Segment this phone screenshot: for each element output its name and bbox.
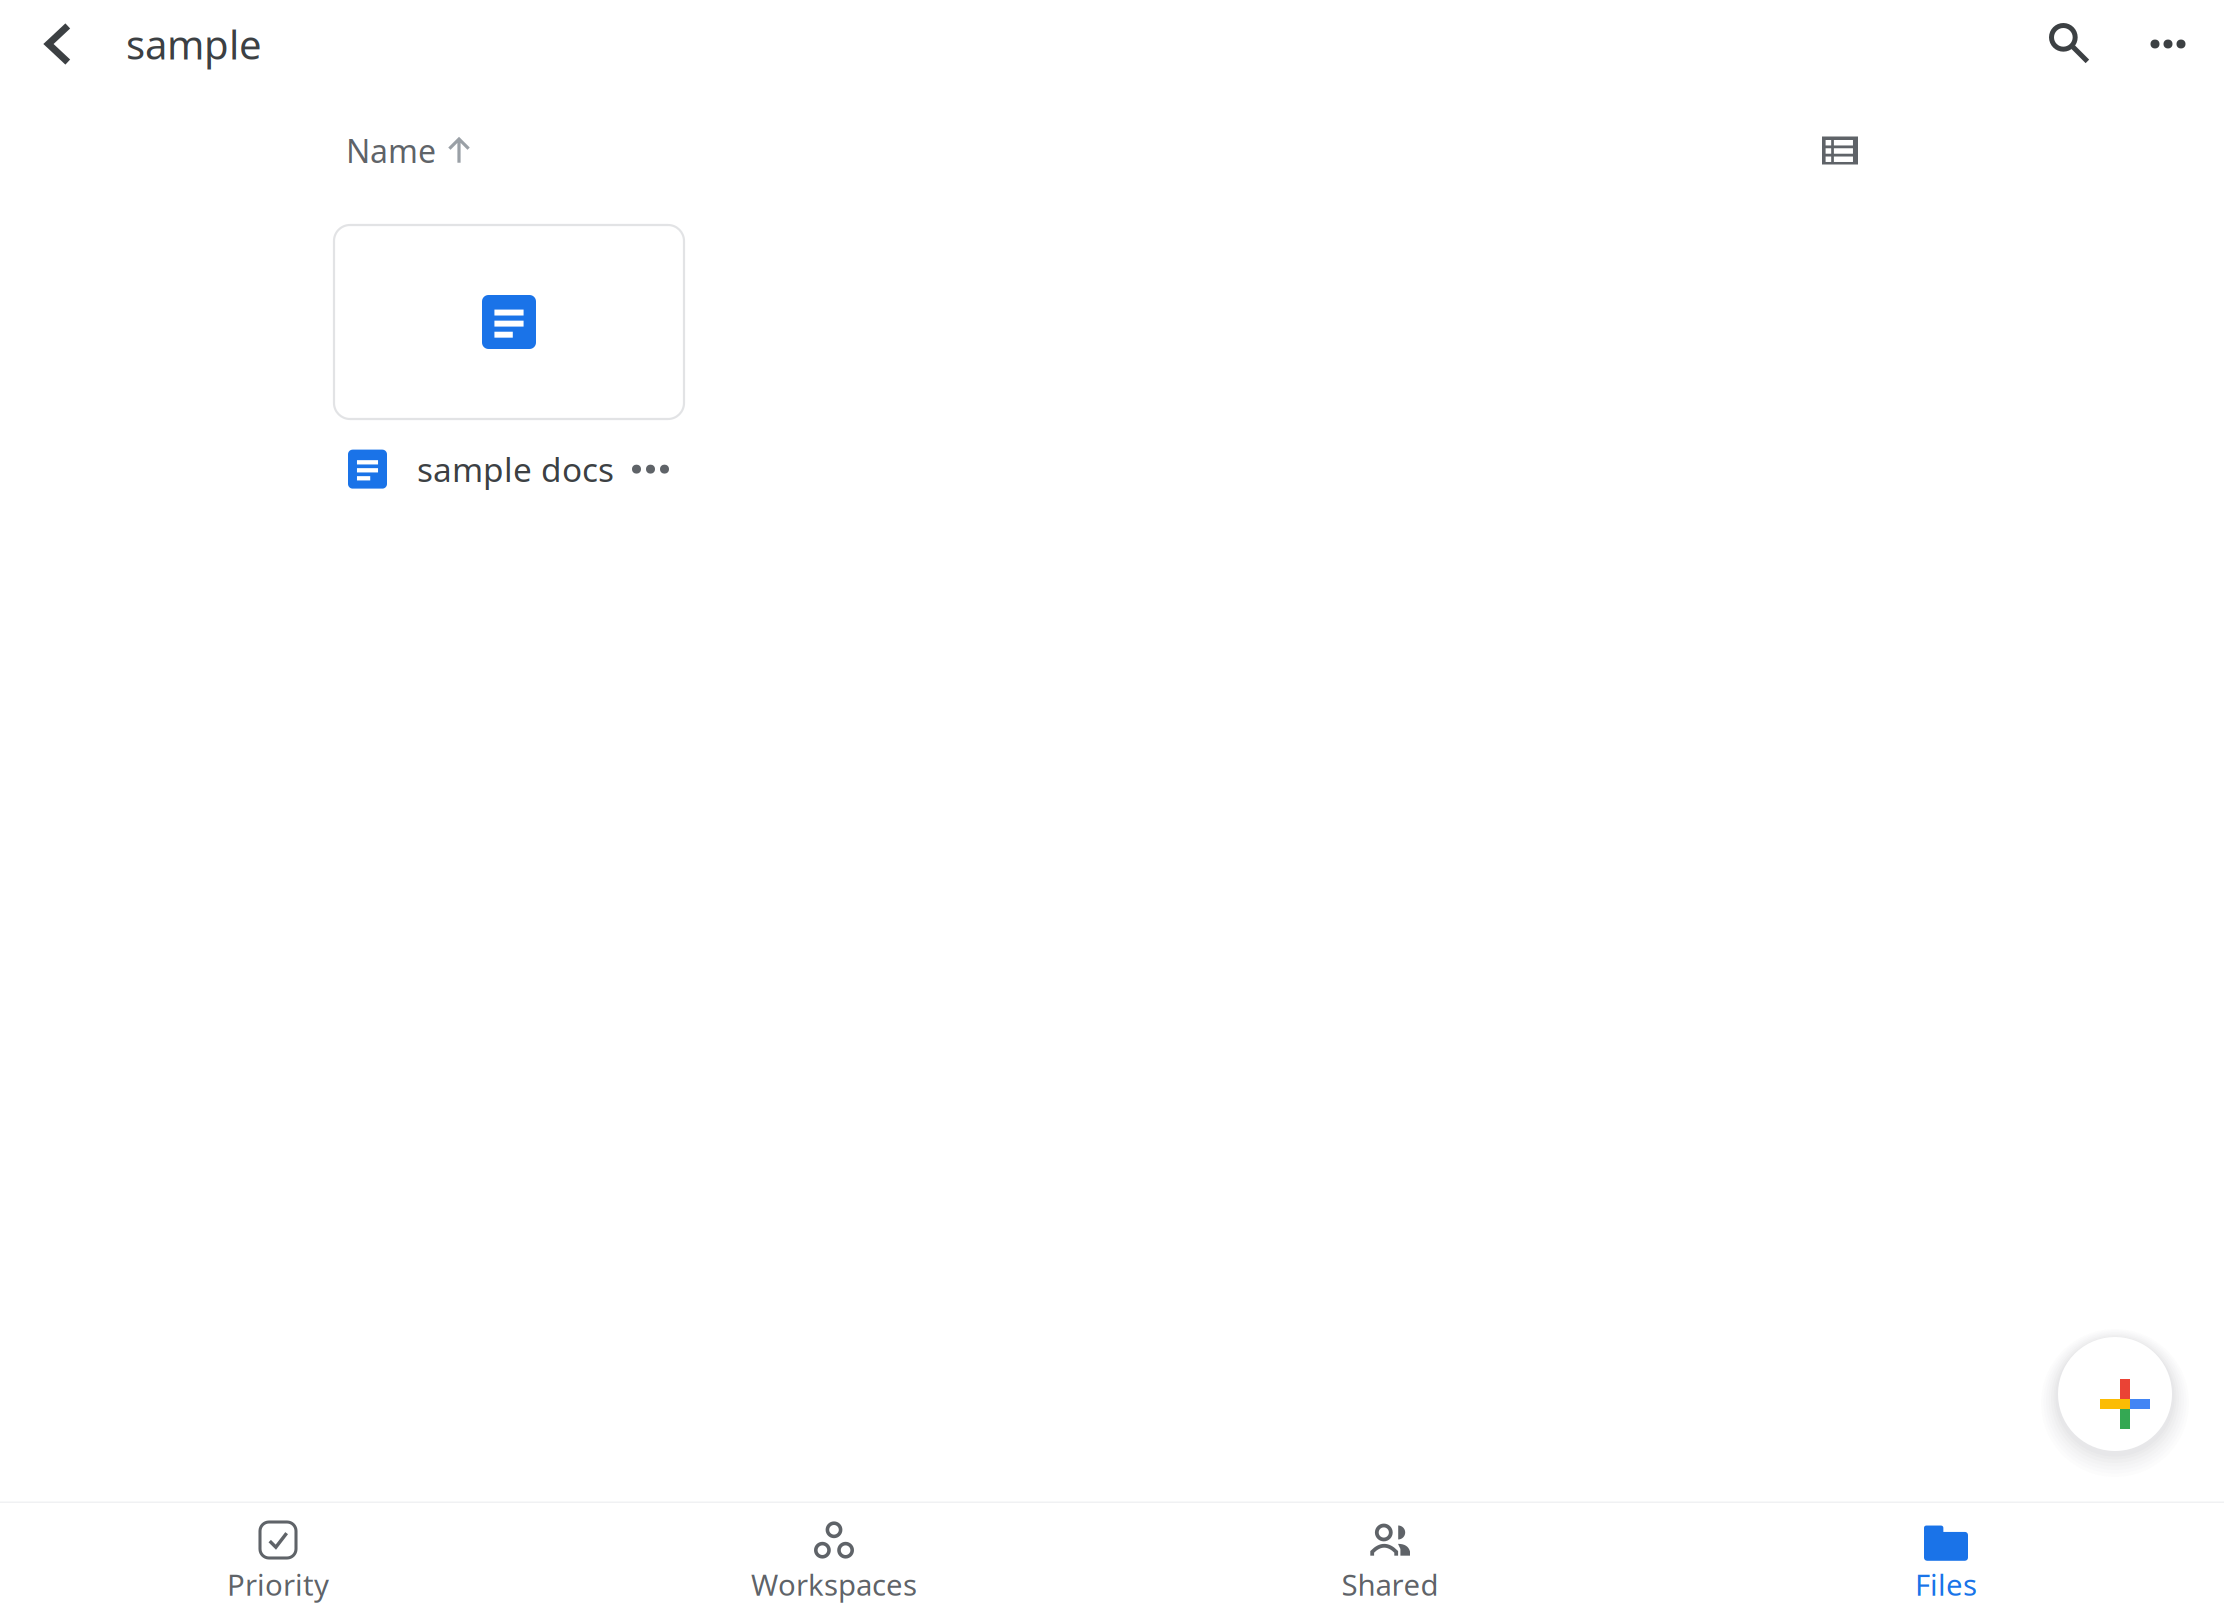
staticText: sample docs bbox=[417, 447, 614, 491]
button[interactable]: Back bbox=[28, 1, 84, 87]
button[interactable]: Shared bbox=[1112, 1500, 1668, 1615]
button[interactable]: Workspaces bbox=[556, 1500, 1112, 1615]
staticText: Priority bbox=[227, 1565, 329, 1604]
button[interactable]: Priority bbox=[0, 1500, 556, 1615]
button[interactable]: More options bbox=[2118, 1, 2218, 87]
button[interactable]: Create new bbox=[2036, 1315, 2194, 1473]
button[interactable]: Name bbox=[330, 113, 488, 188]
button[interactable]: Search bbox=[2022, 1, 2118, 87]
staticText: Files bbox=[1915, 1565, 1977, 1604]
staticText: Workspaces bbox=[751, 1565, 917, 1604]
button[interactable]: sample docs bbox=[334, 225, 764, 491]
button[interactable]: Switch to list view bbox=[1800, 114, 1880, 186]
button[interactable]: Files bbox=[1668, 1500, 2224, 1615]
staticText: sample bbox=[126, 17, 262, 70]
staticText: Shared bbox=[1341, 1565, 1438, 1604]
staticText: Name bbox=[346, 129, 436, 172]
